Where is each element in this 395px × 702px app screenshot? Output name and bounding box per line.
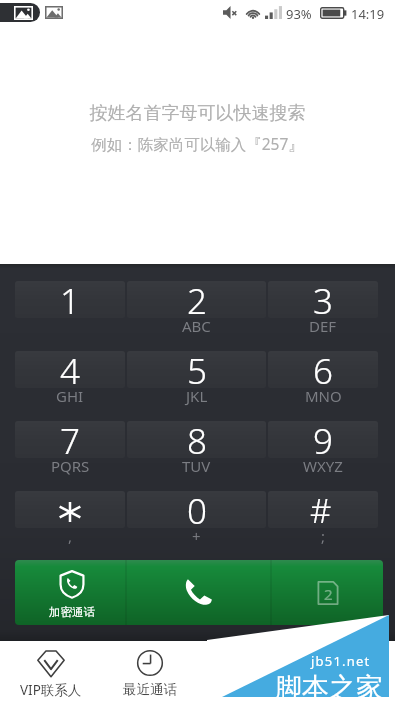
staticText: 按姓名首字母可以快速搜索	[0, 102, 395, 125]
button[interactable]: 3	[268, 281, 378, 351]
staticText: 1	[60, 277, 80, 314]
staticText: GHI	[56, 386, 84, 406]
staticText: ABC	[182, 316, 211, 336]
staticText: 例如：陈家尚可以输入『257』	[0, 133, 395, 154]
staticText: 最近通话	[123, 681, 177, 698]
staticText: 0	[187, 487, 207, 524]
button[interactable]: 拨号	[297, 641, 395, 702]
staticText: 拨号	[334, 681, 361, 698]
button[interactable]: SIM 2	[272, 560, 383, 625]
staticText: 7	[60, 417, 80, 454]
staticText: PQRS	[51, 456, 90, 476]
staticText: 联系人	[228, 681, 269, 698]
staticText: MNO	[305, 386, 342, 406]
staticText: 8	[187, 417, 207, 454]
staticText: VIP联系人	[20, 681, 82, 699]
staticText: 脚本之家	[275, 671, 383, 702]
staticText: 2	[324, 584, 333, 604]
button[interactable]: 1	[15, 281, 125, 351]
staticText: JKL	[186, 386, 208, 406]
button[interactable]: 8	[127, 421, 266, 491]
button[interactable]: 9	[268, 421, 378, 491]
staticText: WXYZ	[303, 456, 343, 476]
button[interactable]: 4	[15, 351, 125, 421]
staticText: ;	[321, 526, 326, 546]
staticText: 93%	[286, 5, 312, 23]
button[interactable]: 加密通话	[15, 560, 125, 625]
button[interactable]: 6	[268, 351, 378, 421]
button[interactable]: 0	[127, 491, 266, 561]
staticText: 4	[60, 347, 80, 384]
staticText: +	[192, 526, 201, 546]
staticText: ,	[68, 526, 73, 546]
staticText: 9	[313, 417, 333, 454]
staticText: TUV	[182, 456, 211, 476]
staticText: jb51.net	[311, 652, 371, 670]
button[interactable]: 7	[15, 421, 125, 491]
button[interactable]: ,	[15, 491, 125, 561]
staticText: 5	[187, 347, 207, 384]
button[interactable]: VIP联系人	[0, 641, 99, 702]
staticText: 3	[313, 277, 333, 314]
button[interactable]: 5	[127, 351, 266, 421]
button[interactable]: 联系人	[198, 641, 297, 702]
staticText: DEF	[309, 316, 337, 336]
staticText: #	[310, 488, 332, 525]
staticText: 6	[313, 347, 333, 384]
staticText: 加密通话	[49, 605, 95, 619]
staticText: 2	[187, 277, 207, 314]
button[interactable]: Call	[127, 560, 270, 625]
button[interactable]: 2	[127, 281, 266, 351]
button[interactable]: 最近通话	[99, 641, 198, 702]
staticText: 14:19	[351, 5, 385, 23]
button[interactable]: #	[268, 491, 378, 561]
